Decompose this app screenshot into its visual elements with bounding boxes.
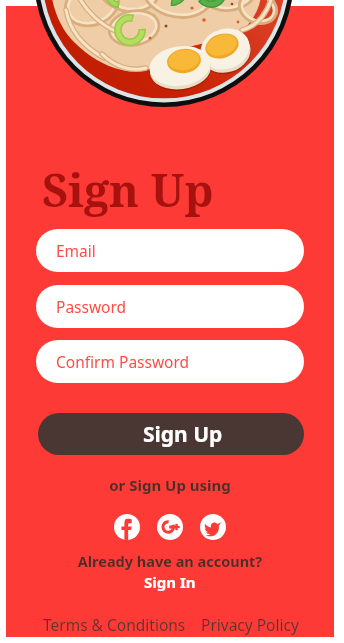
button[interactable]: Confirm Password: [36, 340, 304, 383]
button[interactable]: Password: [36, 285, 304, 328]
staticText: Sign Up: [42, 159, 214, 220]
button[interactable]: Sign In: [144, 572, 196, 592]
staticText: Email: [56, 240, 96, 261]
button[interactable]: Terms & Conditions: [43, 614, 186, 635]
button[interactable]: Email: [36, 229, 304, 272]
staticText: Already have an account?: [6, 551, 334, 571]
button[interactable]: Sign up with Twitter: [200, 514, 226, 540]
staticText: Sign Up: [143, 420, 223, 449]
button[interactable]: Privacy Policy: [201, 614, 299, 635]
staticText: or Sign Up using: [6, 475, 334, 495]
button[interactable]: Sign up with Facebook: [114, 514, 140, 540]
button[interactable]: Sign up with Google Plus: [157, 514, 183, 540]
staticText: Confirm Password: [56, 351, 190, 372]
button[interactable]: Sign Up: [38, 413, 304, 455]
staticText: Password: [56, 296, 127, 317]
